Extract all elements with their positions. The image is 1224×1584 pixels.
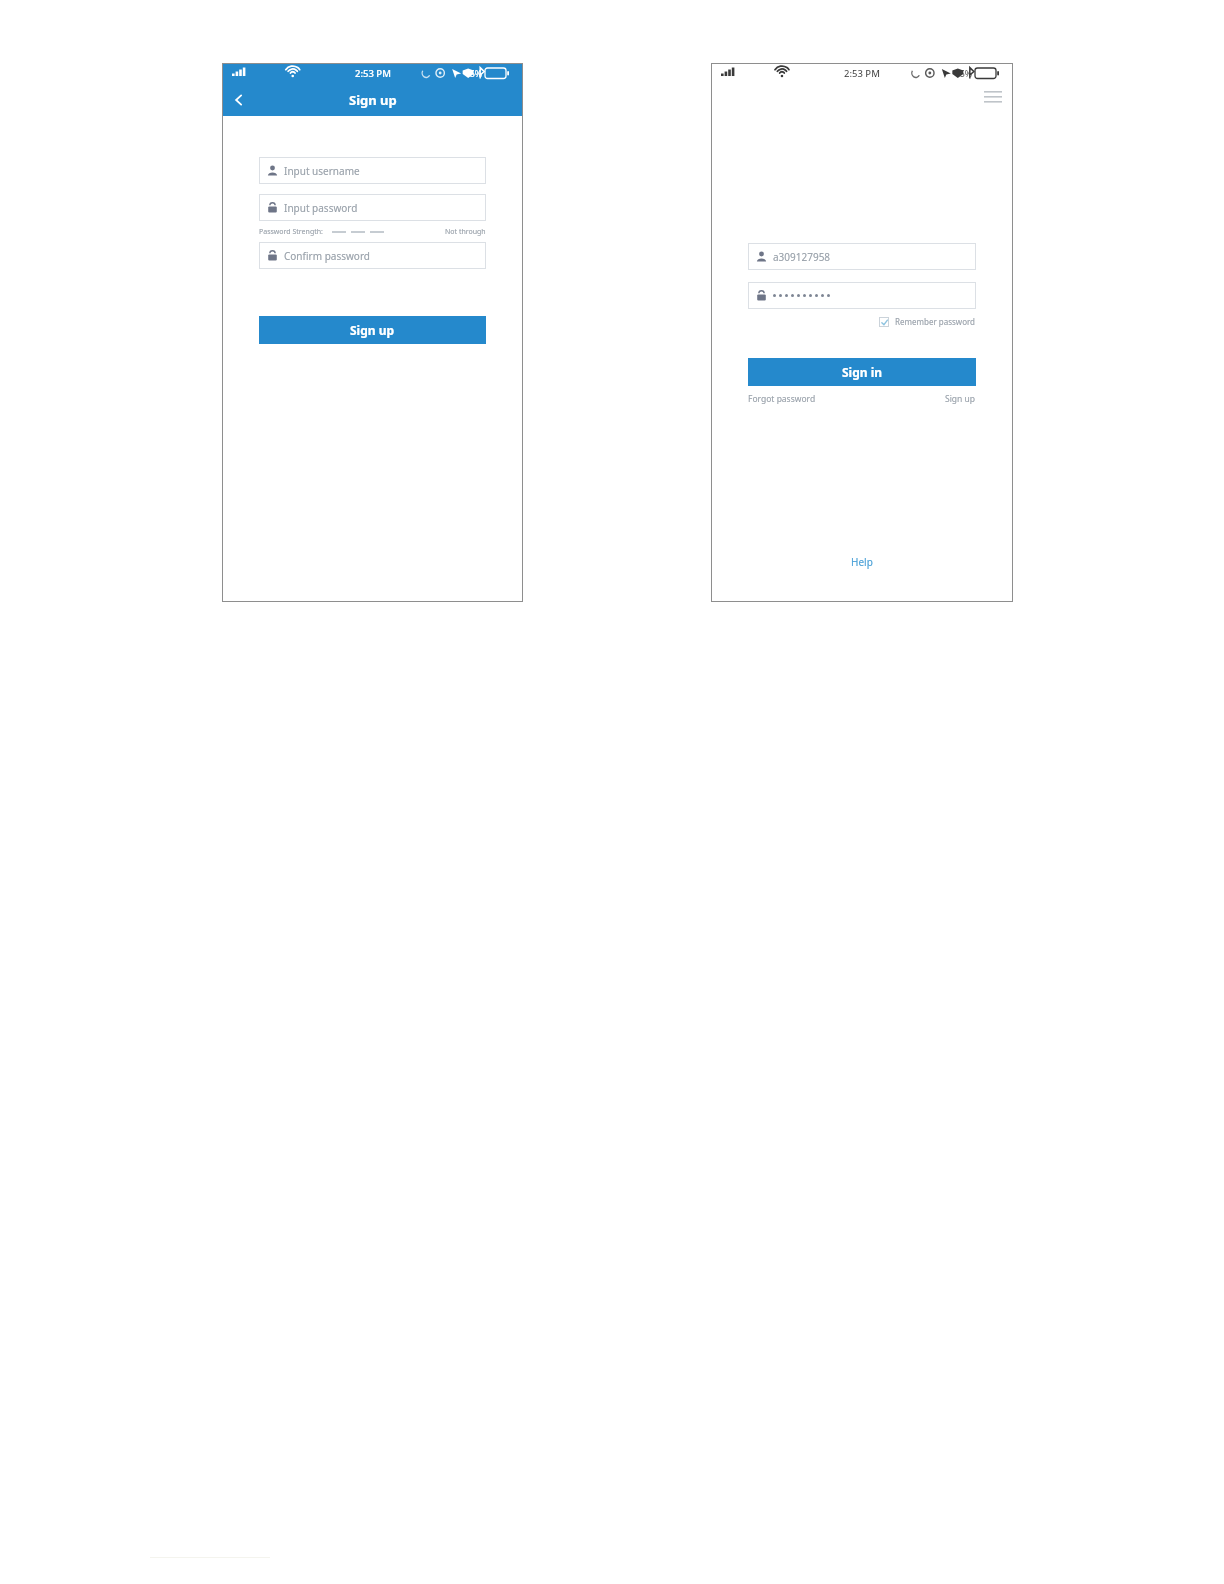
staticText: Password Strength: xyxy=(259,227,323,237)
staticText: 2:53 PM xyxy=(355,67,391,80)
button[interactable]: Menu xyxy=(982,86,1004,108)
button[interactable]: Back xyxy=(222,84,256,116)
staticText: 5% xyxy=(470,68,483,80)
staticText: Forgot password xyxy=(748,393,816,405)
button[interactable]: Input username xyxy=(259,157,486,184)
button[interactable]: Help xyxy=(847,551,877,573)
staticText: Sign up xyxy=(349,91,397,109)
staticText: Not through xyxy=(445,227,486,237)
staticText: Confirm password xyxy=(284,249,370,263)
button[interactable] xyxy=(748,282,976,309)
button[interactable]: Sign up xyxy=(259,316,486,344)
staticText: Help xyxy=(851,555,873,569)
button[interactable]: Sign up xyxy=(945,393,976,405)
button[interactable]: Confirm password xyxy=(259,242,486,269)
button[interactable]: Remember password xyxy=(748,316,976,327)
staticText: Input password xyxy=(284,201,358,215)
staticText: Remember password xyxy=(895,316,976,327)
button[interactable]: Sign in xyxy=(748,358,976,386)
button[interactable]: Forgot password xyxy=(748,393,816,405)
button[interactable]: Input password xyxy=(259,194,486,221)
staticText: 2:53 PM xyxy=(844,67,880,80)
staticText: Input username xyxy=(284,164,360,178)
button[interactable]: a309127958 xyxy=(748,243,976,270)
staticText: Sign up xyxy=(350,322,395,338)
staticText: 5% xyxy=(960,68,973,80)
staticText: Sign in xyxy=(842,364,883,380)
staticText: Sign up xyxy=(945,393,976,405)
staticText: a309127958 xyxy=(773,250,831,264)
